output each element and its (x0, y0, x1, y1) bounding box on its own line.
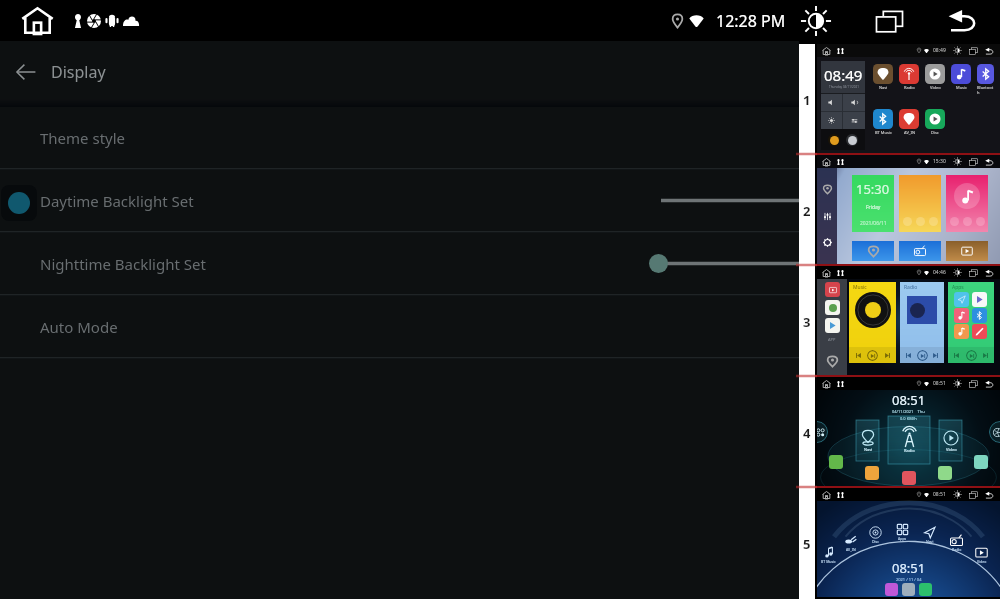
button[interactable]: Back (938, 0, 988, 41)
staticText: 5 (803, 535, 811, 553)
staticText: 08:51 (892, 391, 926, 409)
staticText: Thursday 04/11/2021 (829, 85, 859, 89)
staticText: Video (946, 447, 957, 452)
button[interactable]: Home (9, 0, 65, 41)
staticText: 1 (803, 91, 811, 109)
staticText: Navi (926, 539, 934, 544)
button[interactable]: Navigate up (0, 39, 51, 105)
staticText: Disc (931, 130, 939, 135)
staticText: 15:30 (933, 158, 946, 165)
button[interactable]: Recent apps (864, 0, 914, 41)
staticText: 12:28 PM (716, 10, 786, 32)
staticText: 2021 / 11 / 04 (896, 577, 922, 582)
button[interactable]: Brightness (791, 0, 841, 41)
staticText: Navi (879, 85, 888, 90)
staticText: Apps (952, 284, 964, 291)
staticText: BT Music (875, 130, 892, 135)
staticText: Radio (904, 284, 918, 291)
staticText: 04:46 (933, 269, 946, 276)
staticText: 08:49 (933, 47, 946, 54)
staticText: 4 (803, 424, 811, 442)
staticText: Radio (904, 85, 915, 90)
button[interactable]: Auto Mode (0, 296, 799, 357)
staticText: 0.0 KM/h (900, 416, 917, 421)
staticText: Radio (904, 448, 915, 453)
staticText: Radio (952, 547, 962, 552)
staticText: Apps (898, 536, 907, 541)
staticText: Nighttime Backlight Set (40, 254, 206, 274)
staticText: 08:49 (824, 65, 863, 85)
staticText: BT Music (821, 559, 836, 564)
staticText: Daytime Backlight Set (40, 191, 194, 211)
staticText: AV_IN (904, 130, 915, 135)
staticText: AV_IN (846, 547, 856, 552)
staticText: Auto Mode (40, 317, 118, 337)
staticText: APP (828, 337, 836, 342)
button[interactable]: Nighttime Backlight Set (0, 233, 799, 294)
staticText: 15:30 (856, 180, 890, 198)
staticText: Music (956, 85, 967, 90)
staticText: 04/11/2021 Thu (892, 409, 925, 414)
staticText: Disc (872, 539, 879, 544)
button[interactable]: Daytime Backlight Set (0, 170, 799, 231)
staticText: Music (853, 284, 867, 291)
staticText: 08:51 (933, 380, 946, 387)
staticText: Theme style (40, 128, 126, 148)
staticText: Friday (866, 204, 881, 211)
staticText: 08:51 (892, 559, 926, 577)
staticText: Video (977, 559, 987, 564)
staticText: 08:51 (933, 491, 946, 498)
staticText: Display (51, 61, 106, 83)
staticText: 3 (803, 313, 811, 331)
staticText: Navi (864, 447, 873, 452)
staticText: Bluetooth (977, 85, 994, 95)
button[interactable]: Theme style (0, 107, 799, 168)
staticText: Video (930, 85, 941, 90)
staticText: 2 (803, 202, 811, 220)
staticText: 2021/06/11 (860, 220, 887, 227)
